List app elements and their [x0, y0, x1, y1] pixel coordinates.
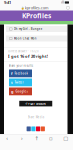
button[interactable]: g [9, 87, 32, 95]
button[interactable]: Tabs [58, 134, 73, 142]
button[interactable]: Share [29, 134, 44, 142]
button[interactable]: Share on Twitter [31, 126, 35, 131]
staticText: ▢ [63, 135, 68, 141]
staticText: Share Media [28, 115, 44, 119]
button[interactable]: Share on Facebook [27, 126, 31, 131]
button[interactable]: f [9, 69, 32, 77]
staticText: ıll [61, 1, 64, 4]
button[interactable]: Forward [15, 134, 29, 142]
button[interactable]: Back [0, 134, 15, 142]
staticText: Facebook [14, 72, 28, 75]
staticText: Share your results: [8, 64, 33, 67]
staticText: Twitter [14, 81, 23, 84]
staticText: correct answer · 16/20 [8, 49, 39, 53]
staticText: ↺ [25, 102, 27, 105]
staticText: 🔒 [21, 6, 24, 9]
button[interactable]: Bookmarks [44, 134, 58, 142]
staticText: Moon Chae Won [14, 37, 37, 40]
button[interactable]: Share on Reddit [41, 126, 45, 131]
button[interactable]: Moon Chae Won [6, 35, 67, 41]
button[interactable]: 🔒 [0, 5, 73, 10]
button[interactable]: Share on Pinterest [36, 126, 40, 131]
staticText: ↑ [34, 135, 38, 141]
staticText: Oh my Girl - Bungee [14, 27, 43, 31]
staticText: kprofiles.com [25, 5, 49, 10]
staticText: g [11, 89, 14, 94]
staticText: PLAY AGAIN! [28, 102, 46, 105]
staticText: t [11, 80, 13, 85]
staticText: f [11, 71, 13, 76]
staticText: ‹ [6, 135, 8, 142]
staticText: Google+ [15, 90, 28, 93]
staticText: KProfiles [22, 11, 51, 20]
staticText: 9:41 [4, 0, 11, 5]
button[interactable]: ↺ [19, 101, 52, 106]
staticText: ▫ [49, 135, 53, 141]
staticText: › [21, 135, 23, 142]
button[interactable]: Oh my Girl - Bungee [6, 26, 67, 32]
button[interactable]: t [9, 78, 32, 86]
staticText: I got 16 of 20 right! [8, 54, 48, 59]
